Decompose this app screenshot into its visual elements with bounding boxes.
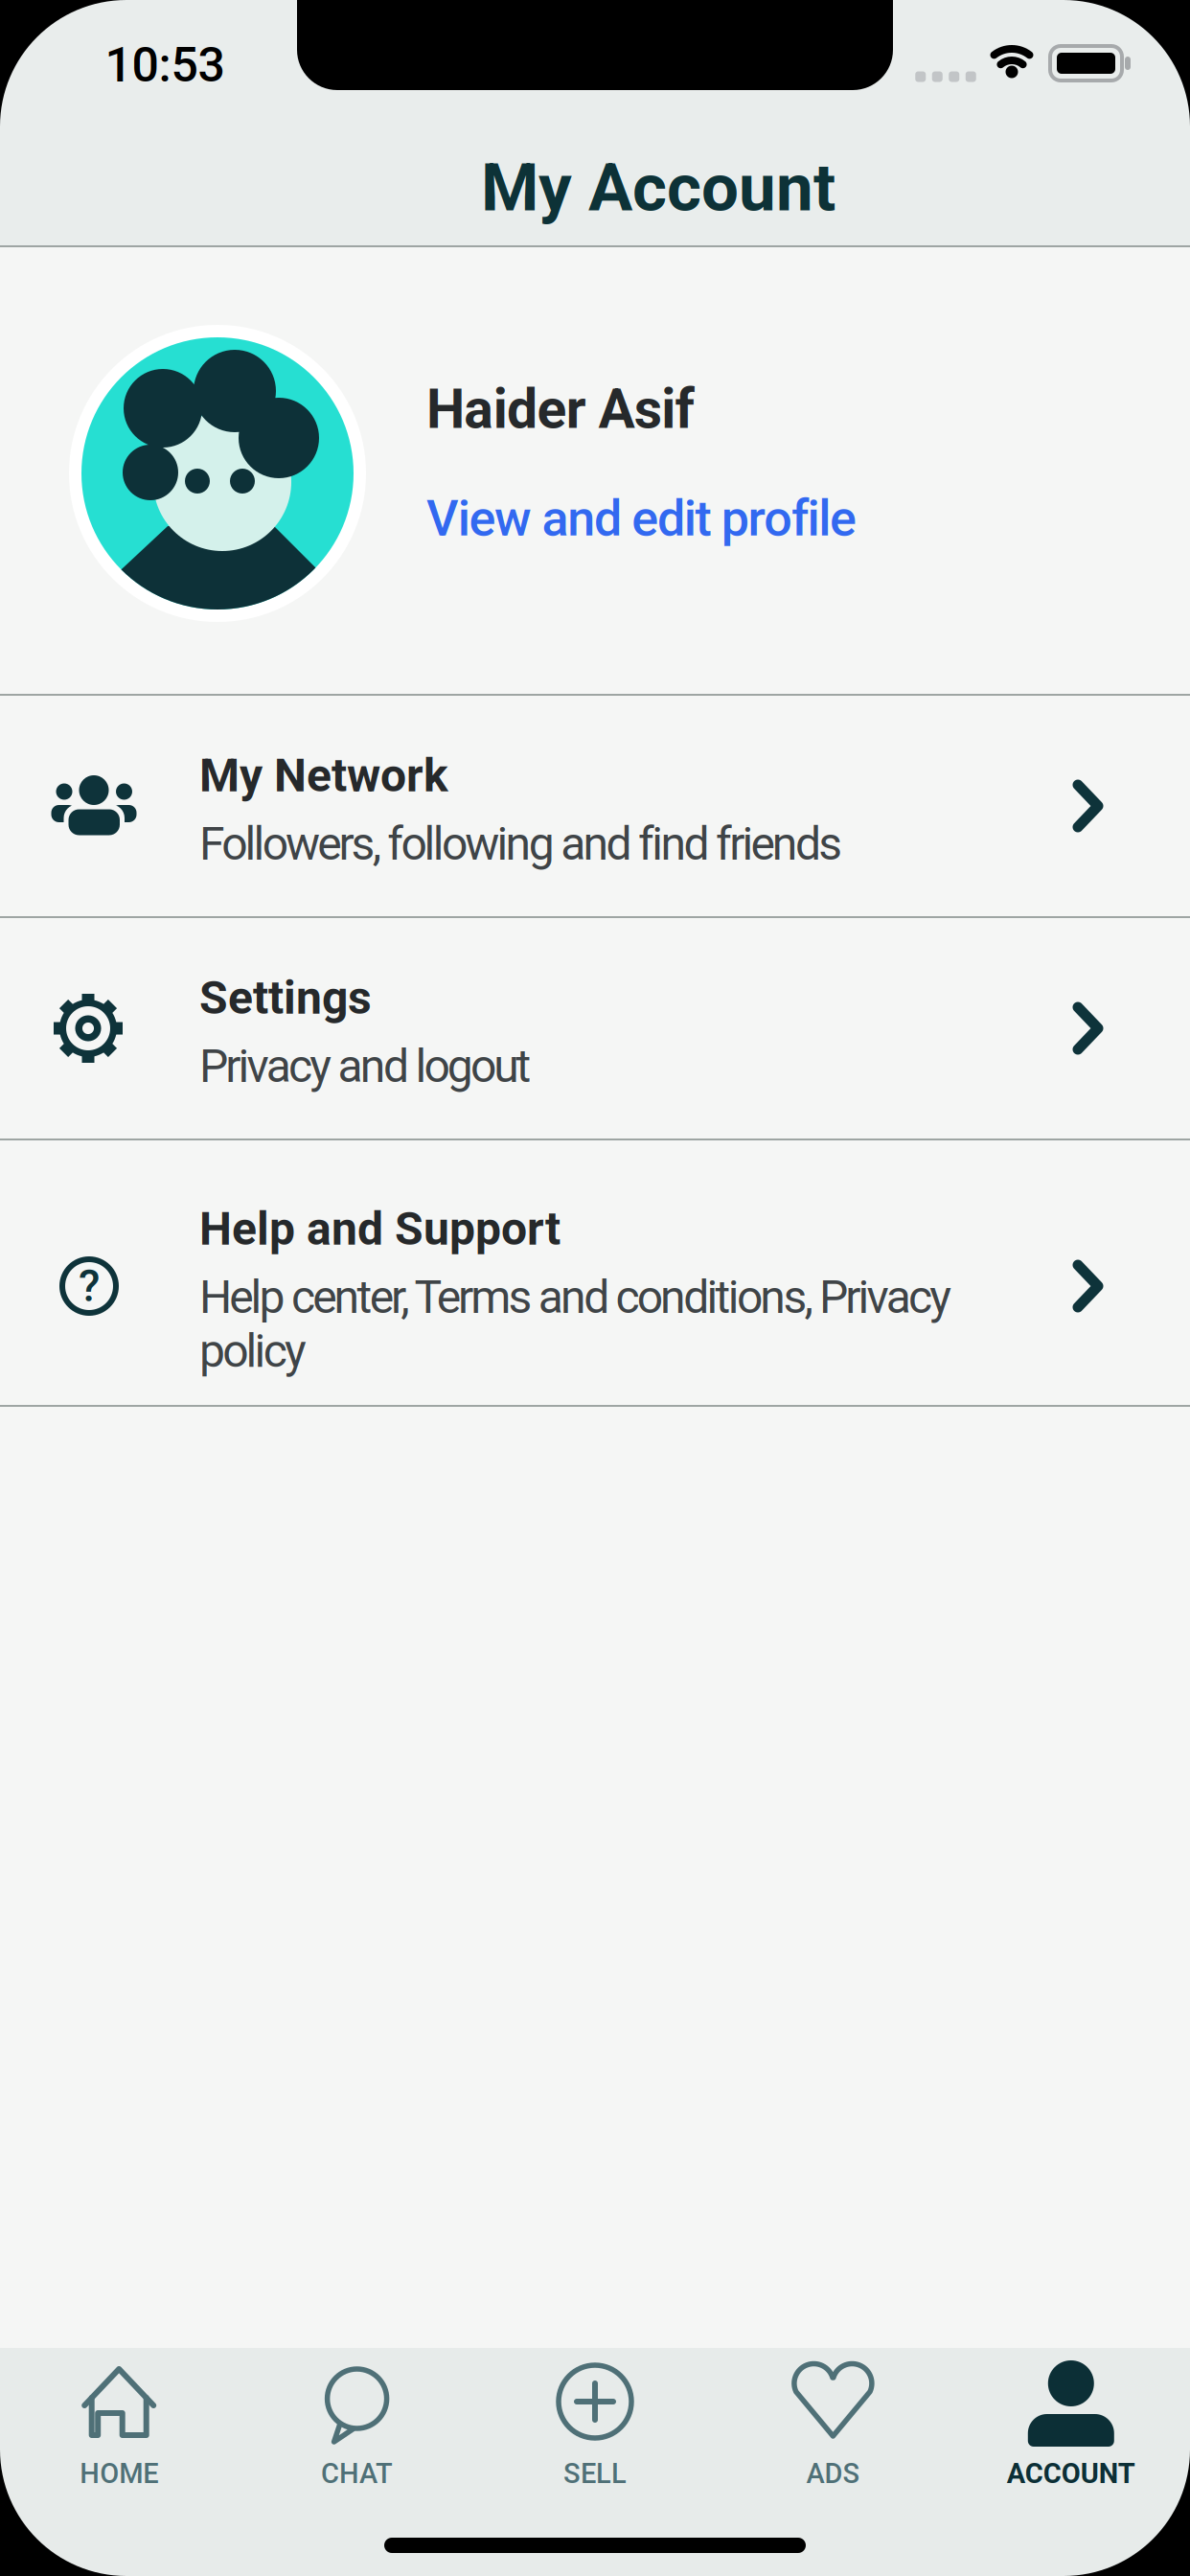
button[interactable]: Haider Asif xyxy=(0,247,1190,694)
button[interactable]: HOME xyxy=(0,2348,238,2576)
staticText: Settings xyxy=(199,971,372,1025)
staticText: 10:53 xyxy=(105,37,225,93)
button[interactable]: ADS xyxy=(714,2348,952,2576)
staticText: CHAT xyxy=(321,2457,393,2490)
staticText: Haider Asif xyxy=(426,377,694,441)
staticText: My Network xyxy=(199,749,448,803)
staticText: ? xyxy=(79,1260,100,1312)
staticText: Privacy and logout xyxy=(199,1039,531,1093)
button[interactable]: ACCOUNT xyxy=(952,2348,1190,2576)
button[interactable]: SELL xyxy=(476,2348,714,2576)
staticText: ACCOUNT xyxy=(1007,2457,1135,2490)
staticText: Followers, following and find friends xyxy=(199,817,842,871)
button[interactable]: ? xyxy=(0,1154,1190,1418)
staticText: View and edit profile xyxy=(426,489,857,548)
button[interactable]: My Network xyxy=(0,696,1190,916)
staticText: ADS xyxy=(806,2457,860,2490)
staticText: SELL xyxy=(563,2457,627,2490)
staticText: My Account xyxy=(481,149,835,227)
staticText: Help center, Terms and conditions, Priva… xyxy=(199,1270,952,1378)
button[interactable]: Settings xyxy=(0,918,1190,1138)
button[interactable]: CHAT xyxy=(238,2348,476,2576)
staticText: HOME xyxy=(80,2457,158,2490)
staticText: Help and Support xyxy=(199,1202,561,1256)
